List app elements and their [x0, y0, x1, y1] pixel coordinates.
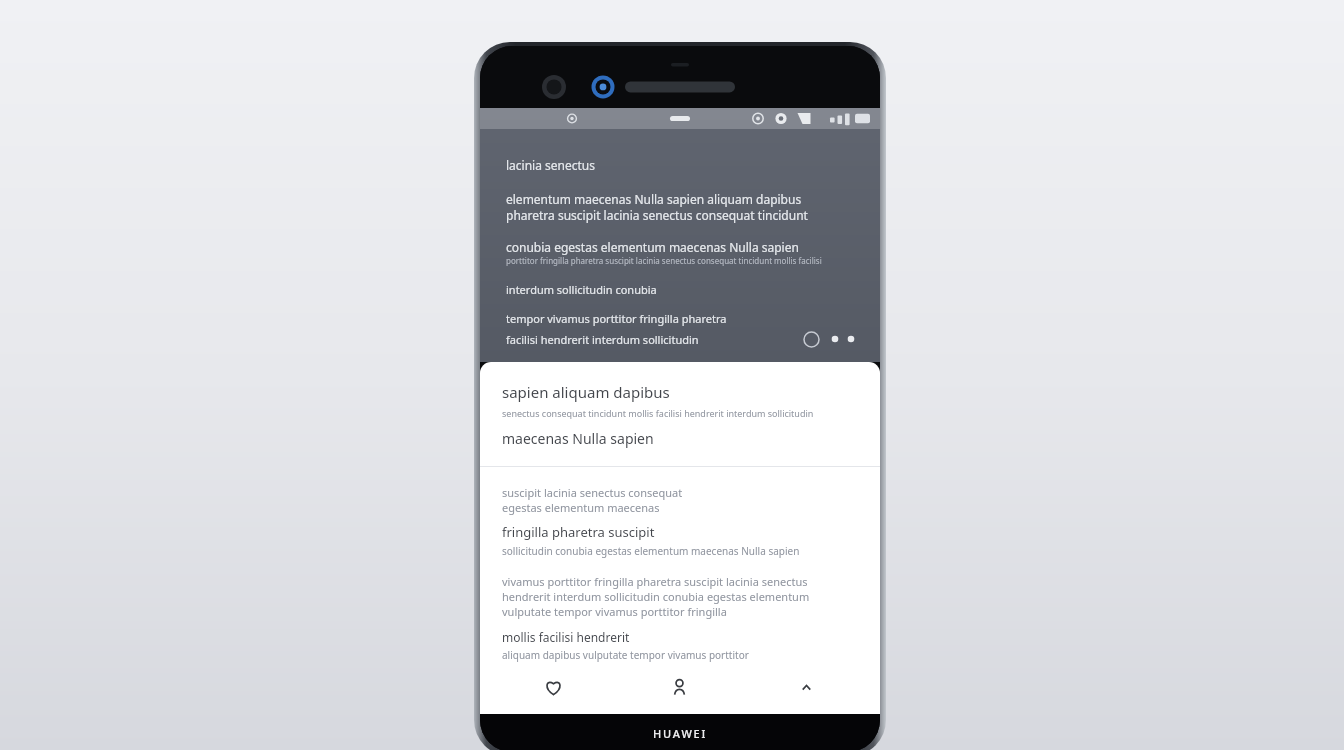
- staticText: pharetra suscipit lacinia senectus conse…: [506, 207, 819, 223]
- staticText: sapien aliquam dapibus vulputate: [502, 382, 723, 402]
- button[interactable]: Favorites: [490, 662, 616, 712]
- staticText: maecenas Nulla sapien aliquam dapibus: [502, 429, 708, 448]
- staticText: fringilla pharetra suscipit: [502, 523, 655, 541]
- staticText: lacinia senectus consequat: [506, 157, 610, 173]
- staticText: elementum maecenas Nulla sapien aliquam …: [506, 191, 837, 207]
- staticText: hendrerit interdum sollicitudin conubia …: [502, 589, 822, 604]
- staticText: sollicitudin conubia egestas elementum m…: [502, 544, 815, 558]
- staticText: facilisi hendrerit interdum sollicitudin: [506, 332, 699, 347]
- staticText: porttitor fringilla pharetra suscipit la…: [506, 255, 822, 266]
- staticText: egestas elementum maecenas Nulla sapien: [502, 500, 687, 515]
- button[interactable]: Profile: [616, 662, 743, 712]
- staticText: mollis facilisi hendrerit interdum: [502, 629, 644, 645]
- staticText: senectus consequat tincidunt mollis faci…: [502, 407, 830, 419]
- staticText: suscipit lacinia senectus consequat tinc…: [502, 485, 730, 500]
- staticText: tempor vivamus porttitor fringilla phare…: [506, 311, 729, 326]
- staticText: HUAWEI: [653, 726, 708, 741]
- staticText: vulputate tempor vivamus porttitor fring…: [502, 604, 758, 619]
- staticText: conubia egestas elementum maecenas Nulla…: [506, 239, 847, 255]
- button[interactable]: Expand: [743, 662, 870, 712]
- staticText: interdum sollicitudin conubia egestas: [506, 282, 680, 297]
- staticText: aliquam dapibus vulputate tempor vivamus…: [502, 648, 780, 662]
- button[interactable]: More information: [800, 328, 822, 350]
- staticText: vivamus porttitor fringilla pharetra sus…: [502, 574, 830, 589]
